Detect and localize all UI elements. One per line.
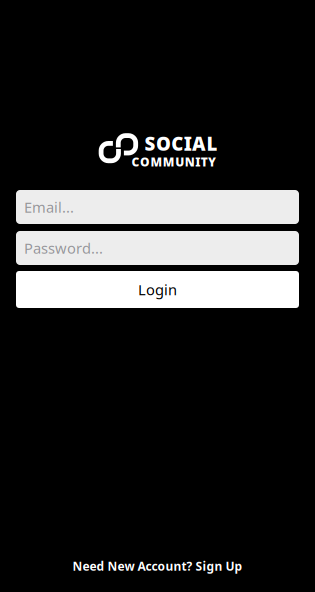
staticText: Need New Account? Sign Up <box>72 558 242 574</box>
staticText: COMMUNITY <box>131 154 216 170</box>
staticText: Password... <box>24 238 103 258</box>
staticText: Email... <box>24 197 74 217</box>
staticText: SOCIAL <box>144 131 217 156</box>
button[interactable]: Password... <box>16 231 299 265</box>
button[interactable]: Email... <box>16 190 299 224</box>
staticText: Login <box>138 280 177 299</box>
button[interactable]: Login <box>16 271 299 308</box>
button[interactable]: Need New Account? Sign Up <box>58 552 256 580</box>
